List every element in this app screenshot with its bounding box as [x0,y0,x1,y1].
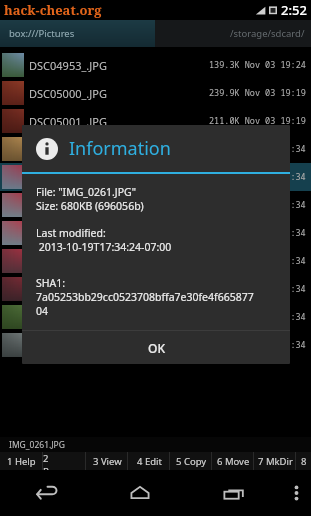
staticText: 7a05253bb29cc0523708bffa7e30fe4f665877 [36,290,254,304]
staticText: 3 View [93,455,122,468]
button[interactable]: 7 MkDir [254,452,296,470]
staticText: DSC05001_.JPG [29,114,209,129]
staticText: 2013-10-19T17:34:24-07:00 [36,240,172,254]
staticText: 655K Oct 19 20:34 [219,255,306,267]
button[interactable]: 1 Help [0,452,43,470]
button[interactable]: OK [22,331,290,364]
staticText: 7 MkDir [258,455,293,468]
staticText: Last modified: [36,226,106,240]
staticText: /storage/sdcard/ [230,27,305,40]
button[interactable]: Back [0,470,93,516]
staticText: 4 Edit [137,455,162,468]
button[interactable]: More options [281,470,311,516]
staticText: 2 Rename [43,452,86,470]
staticText: IMG_0265.JPG [29,282,219,297]
staticText: 5 Copy [176,455,207,468]
staticText: Information [69,136,171,161]
button[interactable]: IMG_0263.JPG [0,219,311,247]
staticText: 239.9K Nov 03 19:19 [209,87,306,99]
button[interactable]: IMG_0261.JPG [0,163,311,191]
button[interactable]: IMG_0262.JPG [0,191,311,219]
staticText: 690K Oct 19 20:34 [219,199,306,211]
button[interactable]: 3 View [86,452,128,470]
staticText: OK [148,340,165,356]
staticText: DSC05000_.JPG [29,86,209,101]
staticText: 680K Oct 19 20:34 [219,171,306,183]
staticText: IMG_0262.JPG [29,198,219,213]
button[interactable]: Home [93,470,187,516]
button[interactable]: Recent apps [187,470,281,516]
button[interactable]: IMG_0265.JPG [0,275,311,303]
staticText: IMG_0263.JPG [29,226,219,241]
button[interactable]: img_2439.jpg [0,331,311,359]
staticText: 1 Help [7,455,36,468]
staticText: Size: 680KB (696056b) [36,199,144,213]
button[interactable]: 2 Rename [43,452,86,470]
staticText: 211.0K Nov 03 19:19 [209,115,306,127]
staticText: File: "IMG_0261.JPG" [36,185,136,199]
staticText: 702K Oct 19 20:34 [219,227,306,239]
staticText: 139.3K Nov 03 19:24 [209,59,306,71]
staticText: 611K Oct 19 20:34 [219,283,306,295]
button[interactable]: /storage/sdcard/ [155,20,311,47]
button[interactable]: IMG_0259.JPG [0,135,311,163]
staticText: 2:52 [281,1,307,19]
button[interactable]: IMG_0264.JPG [0,247,311,275]
button[interactable]: 5 Copy [170,452,212,470]
staticText: SHA1: [36,276,66,290]
staticText: 6 Move [217,455,250,468]
staticText: 544K Oct 19 20:34 [219,143,306,155]
staticText: 8 [301,455,307,468]
staticText: img_2437.jpg [29,310,219,325]
staticText: DSC04953_.JPG [29,58,209,73]
staticText: IMG_0261.JPG [29,170,219,185]
staticText: IMG_0259.JPG [29,142,219,157]
staticText: box:///Pictures [9,27,75,40]
button[interactable]: img_2437.jpg [0,303,311,331]
button[interactable]: DSC04953_.JPG [0,51,311,79]
button[interactable]: DSC05001_.JPG [0,107,311,135]
button[interactable]: 4 Edit [128,452,170,470]
staticText: 1.2M Oct 19 20:34 [219,339,306,351]
button[interactable]: DSC05000_.JPG [0,79,311,107]
staticText: IMG_0261.JPG [9,439,65,451]
button[interactable]: 8 [296,452,311,470]
staticText: hack-cheat.org [4,1,102,19]
button[interactable]: box:///Pictures [0,20,155,47]
staticText: 04 [36,304,49,318]
button[interactable]: 6 Move [212,452,254,470]
staticText: 2.7M Oct 19 20:34 [219,311,306,323]
staticText: img_2439.jpg [29,338,219,353]
